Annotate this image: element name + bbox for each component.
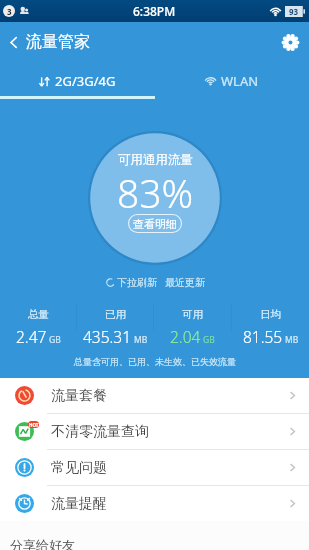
staticText: 日均 (260, 308, 281, 321)
staticText: 查看明细 (133, 217, 177, 231)
button[interactable]: 查看明细 (128, 214, 182, 233)
button[interactable]: 常见问题 (0, 450, 309, 485)
staticText: 流量套餐 (51, 387, 107, 405)
staticText: 最近更新 (165, 276, 205, 289)
staticText: 不清零流量查询 (51, 423, 149, 441)
staticText: GB (203, 334, 215, 346)
button[interactable]: 流量套餐 (0, 378, 309, 413)
staticText: 常见问题 (51, 459, 107, 477)
button[interactable]: WLAN (154, 62, 309, 99)
button[interactable]: Settings (272, 24, 309, 61)
staticText: 下拉刷新 (117, 276, 157, 289)
button[interactable]: HOT (0, 414, 309, 449)
staticText: 2.47 (16, 326, 47, 347)
staticText: 已用 (105, 308, 126, 321)
staticText: 总量含可用、已用、未生效、已失效流量 (74, 356, 236, 367)
staticText: 流量提醒 (51, 495, 107, 513)
staticText: 分享给好友 (10, 537, 75, 550)
staticText: 可用 (182, 308, 203, 321)
staticText: HOT (29, 422, 39, 428)
staticText: MB (285, 334, 299, 346)
button[interactable]: 流量管家 (0, 24, 100, 60)
staticText: 2.04 (170, 326, 201, 347)
staticText: 83% (117, 166, 194, 219)
button[interactable]: 2G/3G/4G (0, 62, 154, 99)
staticText: 2G/3G/4G (55, 72, 116, 90)
staticText: 流量管家 (26, 32, 90, 52)
staticText: GB (49, 334, 61, 346)
staticText: 6:38PM (133, 3, 176, 19)
button[interactable]: 流量提醒 (0, 486, 309, 521)
staticText: 可用通用流量 (118, 152, 193, 168)
staticText: 435.31 (83, 326, 132, 347)
staticText: 总量 (28, 308, 49, 321)
staticText: 3 (7, 6, 12, 17)
staticText: 81.55 (243, 326, 283, 347)
staticText: 93 (289, 6, 299, 17)
staticText: WLAN (221, 72, 259, 90)
button[interactable]: 下拉刷新 (105, 276, 205, 289)
staticText: MB (134, 334, 148, 346)
